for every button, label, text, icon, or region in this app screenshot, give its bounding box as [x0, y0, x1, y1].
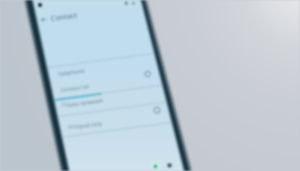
button[interactable]: [54, 84, 161, 107]
staticText: Contact: [50, 10, 78, 23]
staticText: Tripod only: [72, 120, 103, 131]
staticText: Data telework: [66, 97, 104, 109]
button[interactable]: [48, 56, 154, 84]
button[interactable]: [63, 126, 172, 145]
button[interactable]: Add: [151, 162, 160, 171]
staticText: Telephone: [57, 67, 85, 78]
button[interactable]: Back: [39, 14, 50, 25]
staticText: Contact tel: [60, 83, 90, 94]
button[interactable]: [59, 107, 167, 126]
